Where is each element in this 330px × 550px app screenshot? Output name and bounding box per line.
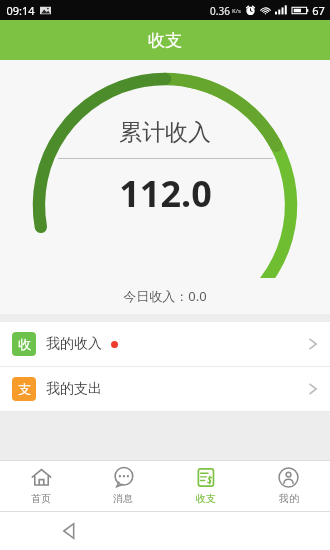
staticText: 收支 bbox=[196, 492, 216, 505]
staticText: 今日收入：0.0 bbox=[123, 287, 207, 305]
button[interactable]: 首页 bbox=[0, 461, 82, 511]
staticText: 收支 bbox=[148, 30, 182, 51]
button[interactable]: 收支 bbox=[164, 461, 247, 511]
staticText: 消息 bbox=[113, 492, 133, 505]
staticText: 累计收入 bbox=[119, 118, 211, 147]
staticText: 67 bbox=[312, 3, 325, 18]
staticText: 我的收入 bbox=[46, 335, 102, 353]
staticText: 我的 bbox=[279, 492, 299, 505]
staticText: 112.0 bbox=[119, 169, 212, 218]
button[interactable]: 支 bbox=[0, 367, 330, 411]
staticText: 首页 bbox=[31, 492, 51, 505]
button[interactable]: Back bbox=[56, 518, 82, 544]
staticText: 支 bbox=[18, 381, 31, 397]
button[interactable]: 消息 bbox=[82, 461, 164, 511]
staticText: 09:14 bbox=[6, 3, 35, 18]
staticText: K/s bbox=[232, 7, 241, 15]
staticText: 0.36 bbox=[210, 4, 230, 18]
staticText: 我的支出 bbox=[46, 380, 102, 398]
button[interactable]: 我的 bbox=[247, 461, 330, 511]
button[interactable]: 收 bbox=[0, 322, 330, 366]
staticText: 收 bbox=[18, 336, 31, 352]
